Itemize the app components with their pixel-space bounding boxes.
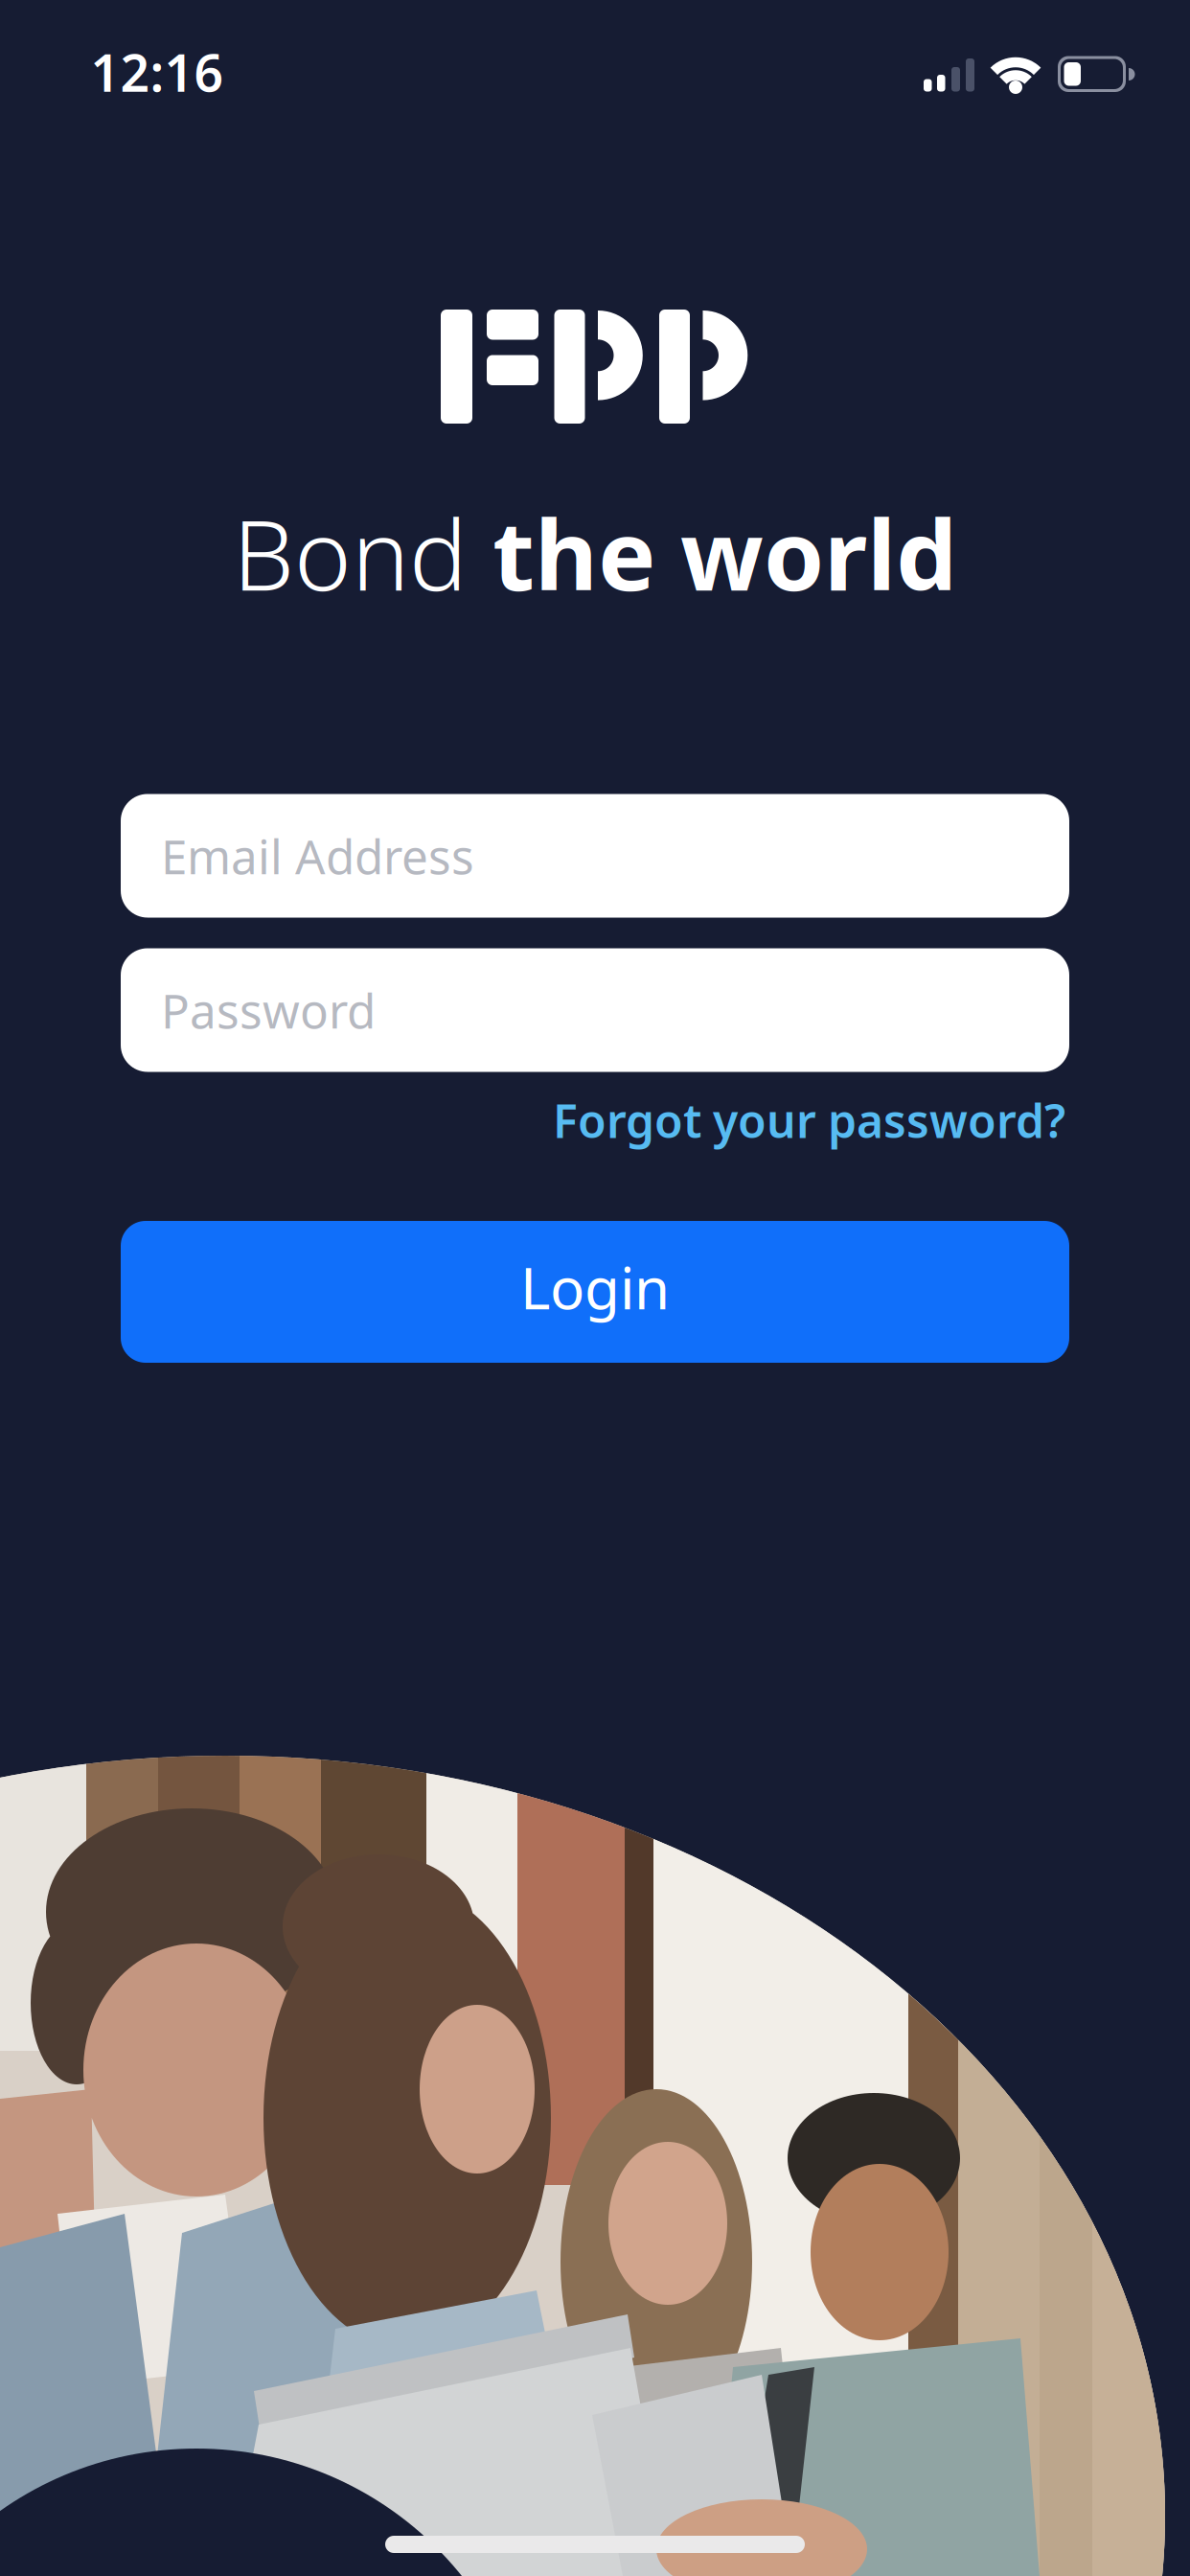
staticText: 12:16 — [91, 38, 224, 106]
staticText: Bond — [233, 488, 492, 617]
staticText: the world — [492, 488, 957, 617]
button[interactable]: Email Address — [121, 794, 1069, 918]
staticText: Email Address — [161, 824, 474, 887]
button[interactable]: Password — [121, 948, 1069, 1072]
staticText: Login — [520, 1249, 670, 1325]
staticText: Forgot your password? — [553, 1090, 1065, 1151]
button[interactable]: Login — [121, 1221, 1069, 1363]
staticText: Password — [161, 979, 376, 1041]
button[interactable]: Forgot your password? — [553, 1090, 1065, 1151]
